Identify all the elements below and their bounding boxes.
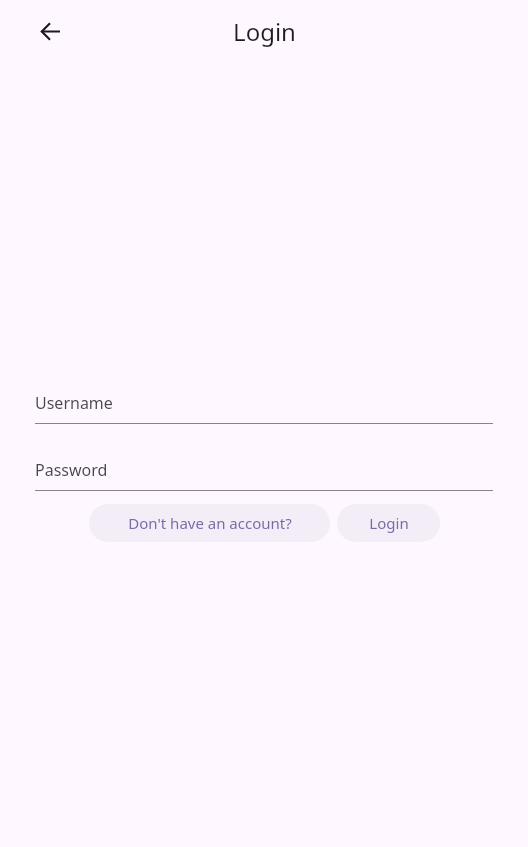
button[interactable]: Login	[337, 504, 440, 542]
staticText: Login	[369, 513, 409, 533]
button[interactable]: Don't have an account?	[89, 504, 330, 542]
staticText: Password	[35, 459, 108, 481]
staticText: Don't have an account?	[128, 513, 292, 533]
staticText: Username	[35, 392, 113, 414]
button[interactable]: Username	[35, 387, 493, 419]
staticText: Login	[233, 15, 296, 48]
button[interactable]: Password	[35, 454, 493, 486]
button[interactable]: Back	[26, 7, 74, 55]
